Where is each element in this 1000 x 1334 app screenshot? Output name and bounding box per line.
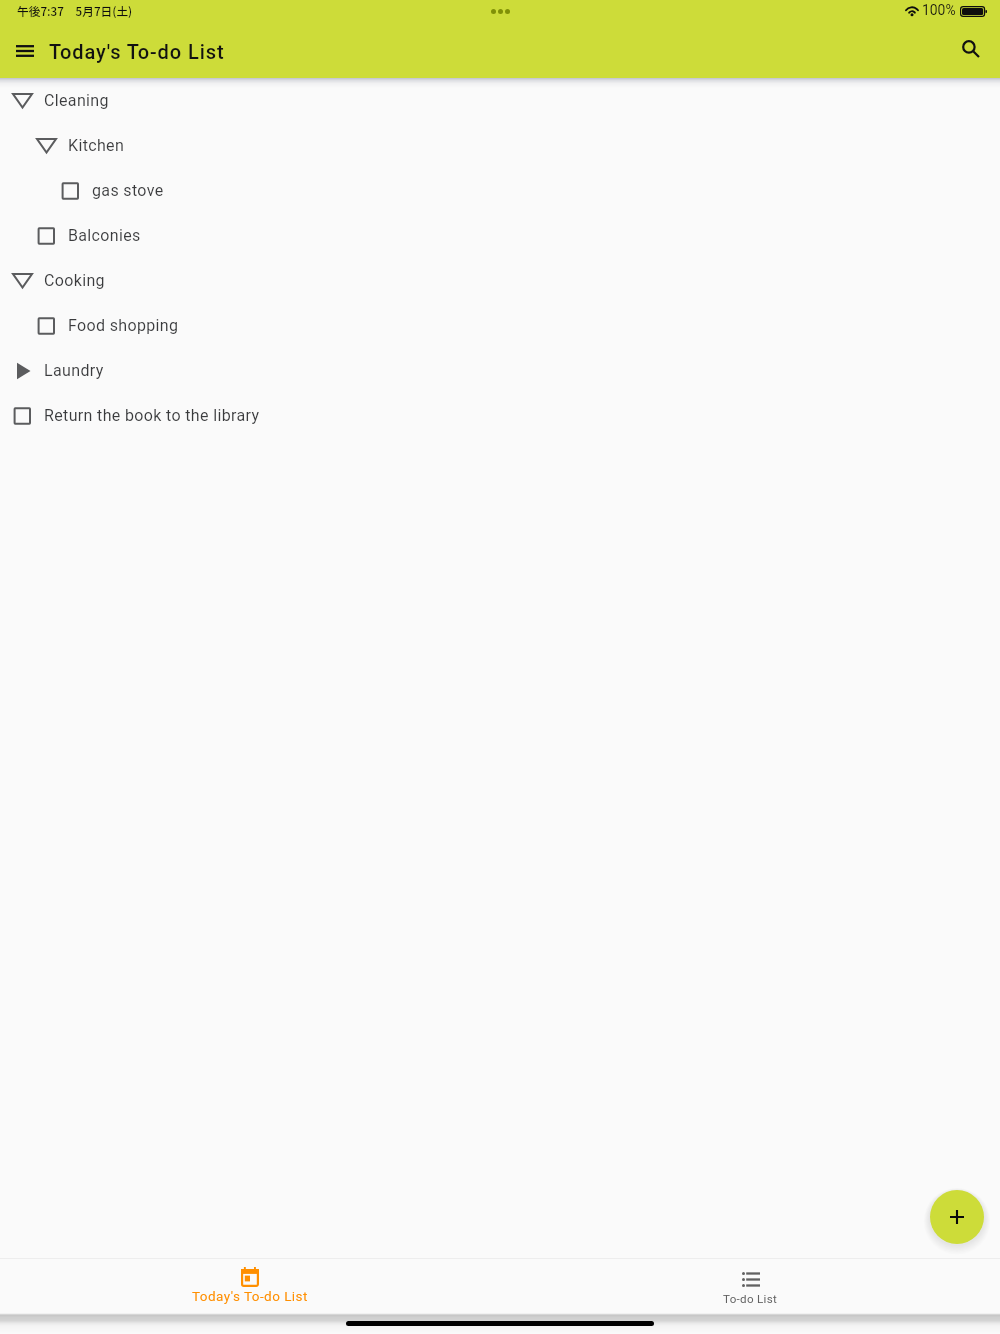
button[interactable]: gas stove: [0, 168, 1000, 213]
staticText: Today's To-do List: [49, 40, 225, 63]
staticText: 午後7:37 5月7日(土): [17, 2, 133, 19]
staticText: 100%: [922, 2, 956, 18]
staticText: Cleaning: [44, 91, 109, 110]
button[interactable]: Today's To-do List: [0, 1259, 500, 1304]
button[interactable]: Search: [952, 26, 1000, 74]
button[interactable]: Kitchen: [0, 123, 1000, 168]
staticText: Balconies: [68, 226, 141, 245]
button[interactable]: Cleaning: [0, 78, 1000, 123]
staticText: Cooking: [44, 271, 105, 290]
staticText: Food shopping: [68, 316, 179, 335]
staticText: Kitchen: [68, 136, 125, 155]
button[interactable]: Menu: [0, 26, 48, 74]
button[interactable]: Cooking: [0, 258, 1000, 303]
staticText: Laundry: [44, 361, 104, 380]
button[interactable]: Balconies: [0, 213, 1000, 258]
staticText: Today's To-do List: [192, 1288, 308, 1304]
button[interactable]: Add: [930, 1190, 984, 1244]
button[interactable]: To-do List: [500, 1259, 1000, 1306]
button[interactable]: Food shopping: [0, 303, 1000, 348]
button[interactable]: Laundry: [0, 348, 1000, 393]
button[interactable]: Return the book to the library: [0, 393, 1000, 438]
staticText: Return the book to the library: [44, 406, 260, 425]
staticText: gas stove: [92, 181, 164, 200]
staticText: To-do List: [723, 1292, 778, 1306]
